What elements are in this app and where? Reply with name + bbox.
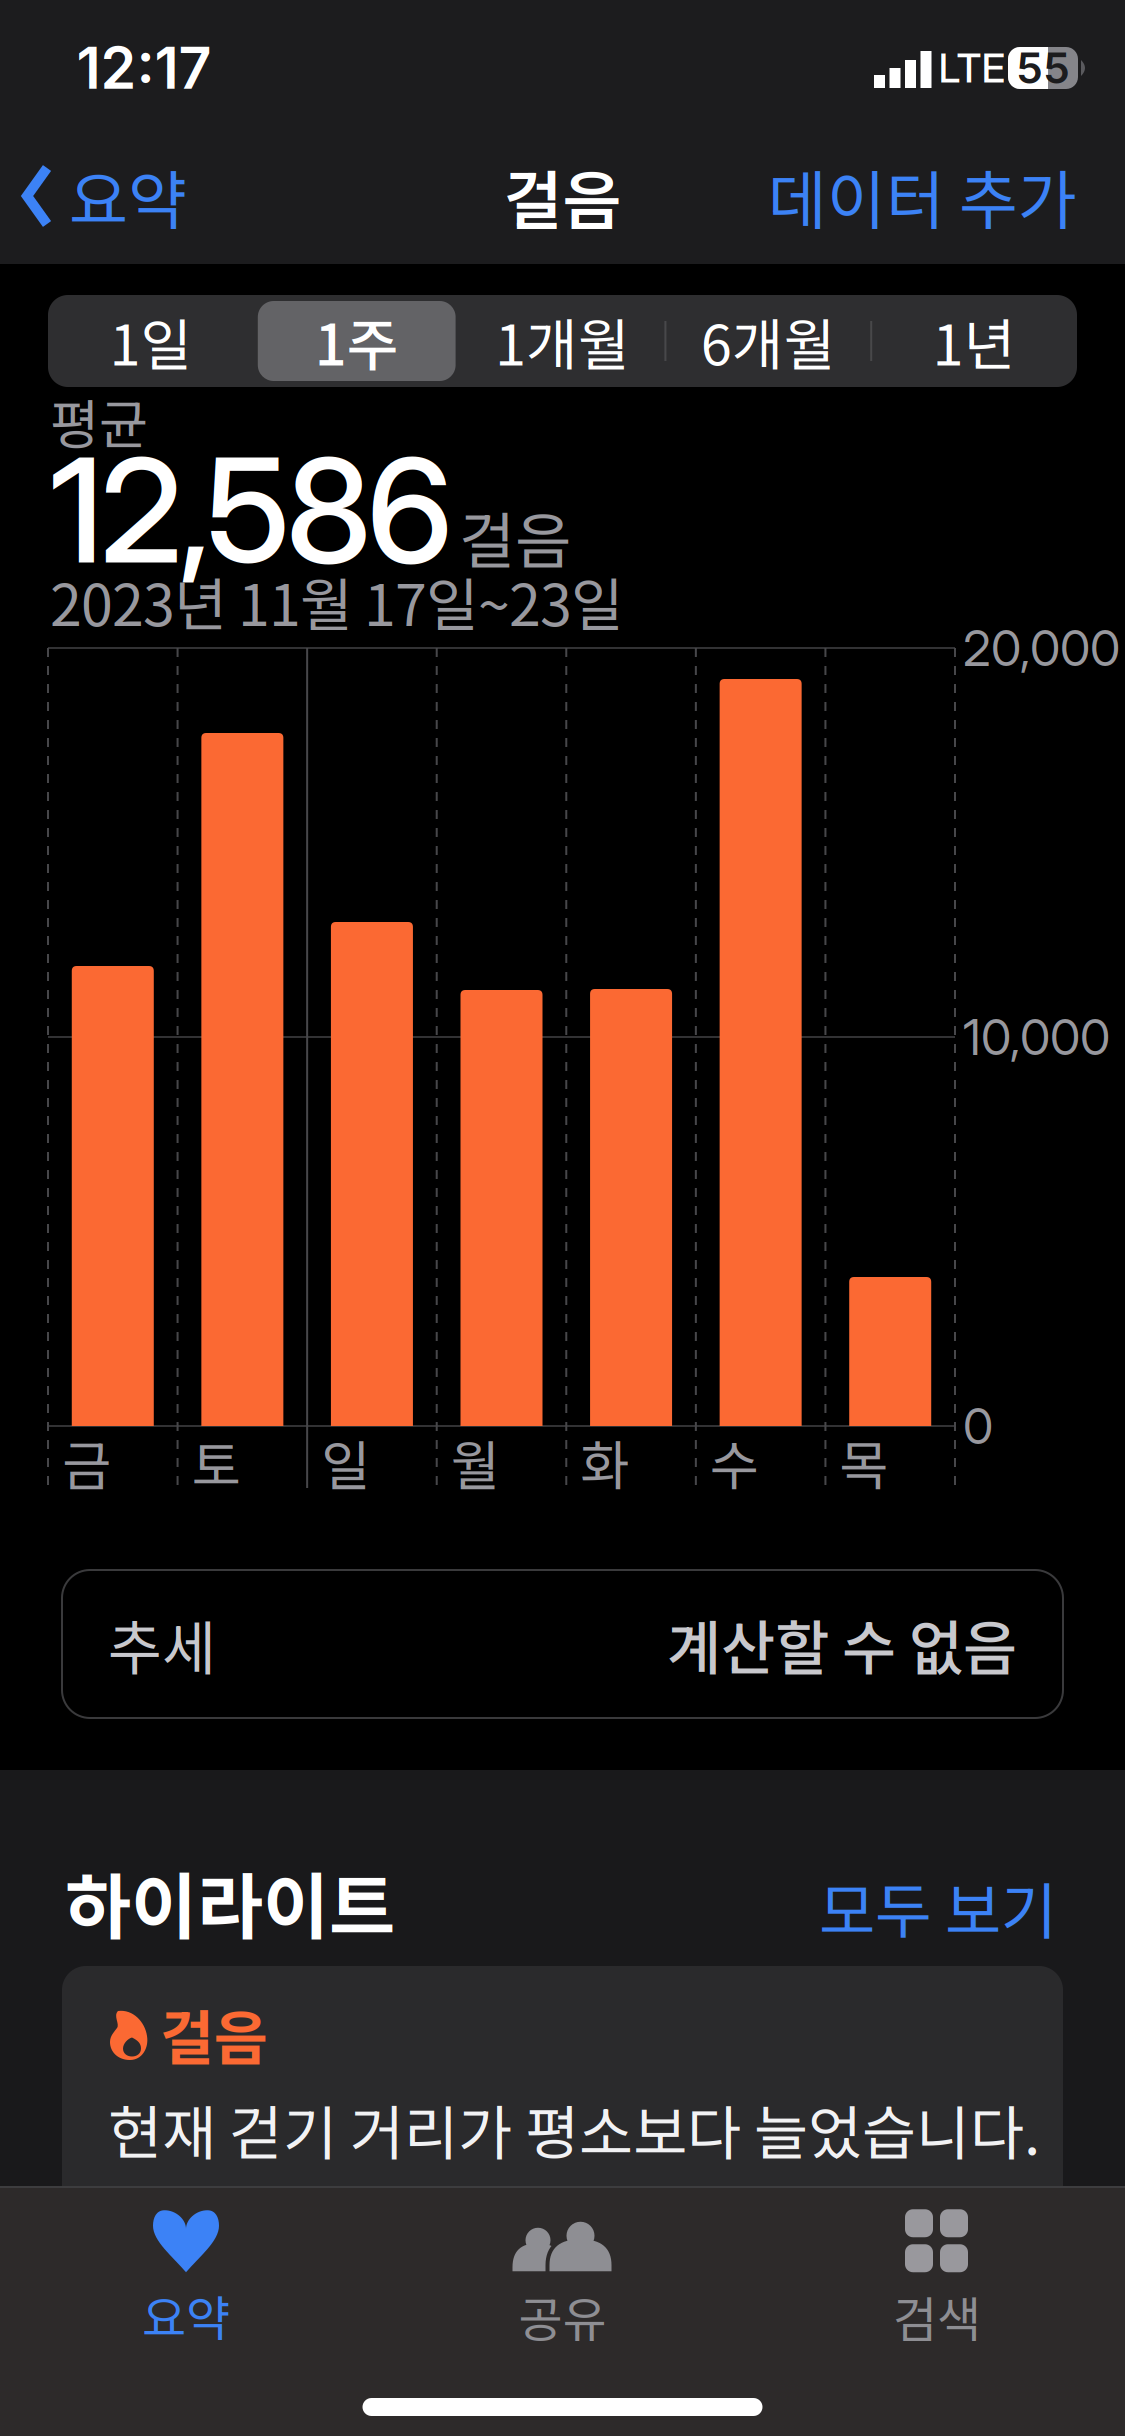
button[interactable]: 1년 [875, 301, 1073, 381]
button[interactable]: 공유 [412, 2200, 712, 2360]
button[interactable]: 6개월 [669, 301, 867, 381]
staticText: 걸음 [459, 492, 571, 581]
staticText: 0 [963, 1396, 993, 1456]
staticText: 1주 [315, 300, 399, 382]
staticText: 토 [192, 1423, 241, 1501]
staticText: 55 [1016, 42, 1070, 94]
button[interactable]: 1개월 [464, 301, 661, 381]
staticText: 하이라이트 [65, 1850, 395, 1954]
staticText: 검색 [893, 2281, 981, 2351]
staticText: 화 [580, 1423, 629, 1501]
staticText: 계산할 수 없음 [667, 1601, 1017, 1686]
button[interactable]: 검색 [787, 2200, 1087, 2360]
staticText: 월 [451, 1423, 500, 1501]
button[interactable]: 추세 [62, 1570, 1063, 1718]
staticText: 12:17 [76, 33, 211, 103]
staticText: 금 [62, 1423, 111, 1501]
button[interactable]: 1일 [52, 301, 250, 381]
staticText: 1년 [933, 300, 1016, 382]
staticText: 평균 [50, 382, 148, 460]
staticText: 공유 [518, 2281, 606, 2351]
staticText: 1개월 [495, 300, 630, 382]
staticText: 데이터 추가 [768, 150, 1077, 242]
staticText: 요약 [142, 2280, 230, 2350]
staticText: 2023년 11월 17일~23일 [50, 559, 624, 642]
staticText: 현재 걷기 거리가 평소보다 늘었습니다. [108, 2086, 1040, 2171]
staticText: 일 [321, 1423, 370, 1501]
staticText: 10,000 [963, 1007, 1110, 1067]
button[interactable]: 요약 [36, 2200, 336, 2360]
staticText: 걸음 [160, 1991, 268, 2076]
staticText: 수 [710, 1423, 759, 1501]
button[interactable]: 데이터 추가 [677, 150, 1077, 242]
staticText: 요약 [69, 150, 187, 242]
staticText: 걸음 [503, 150, 621, 242]
staticText: 모두 보기 [819, 1863, 1057, 1951]
staticText: 1일 [109, 300, 192, 382]
staticText: 12,586 [50, 423, 453, 597]
button[interactable]: 걸음 [62, 1966, 1063, 2266]
staticText: LTE [938, 44, 1005, 92]
button[interactable]: 모두 보기 [757, 1863, 1057, 1951]
button[interactable]: 1주 [258, 301, 456, 381]
staticText: 추세 [108, 1601, 216, 1686]
button[interactable]: Back [23, 161, 187, 231]
staticText: 20,000 [963, 618, 1120, 678]
staticText: 6개월 [701, 300, 836, 382]
staticText: 목 [839, 1423, 888, 1501]
